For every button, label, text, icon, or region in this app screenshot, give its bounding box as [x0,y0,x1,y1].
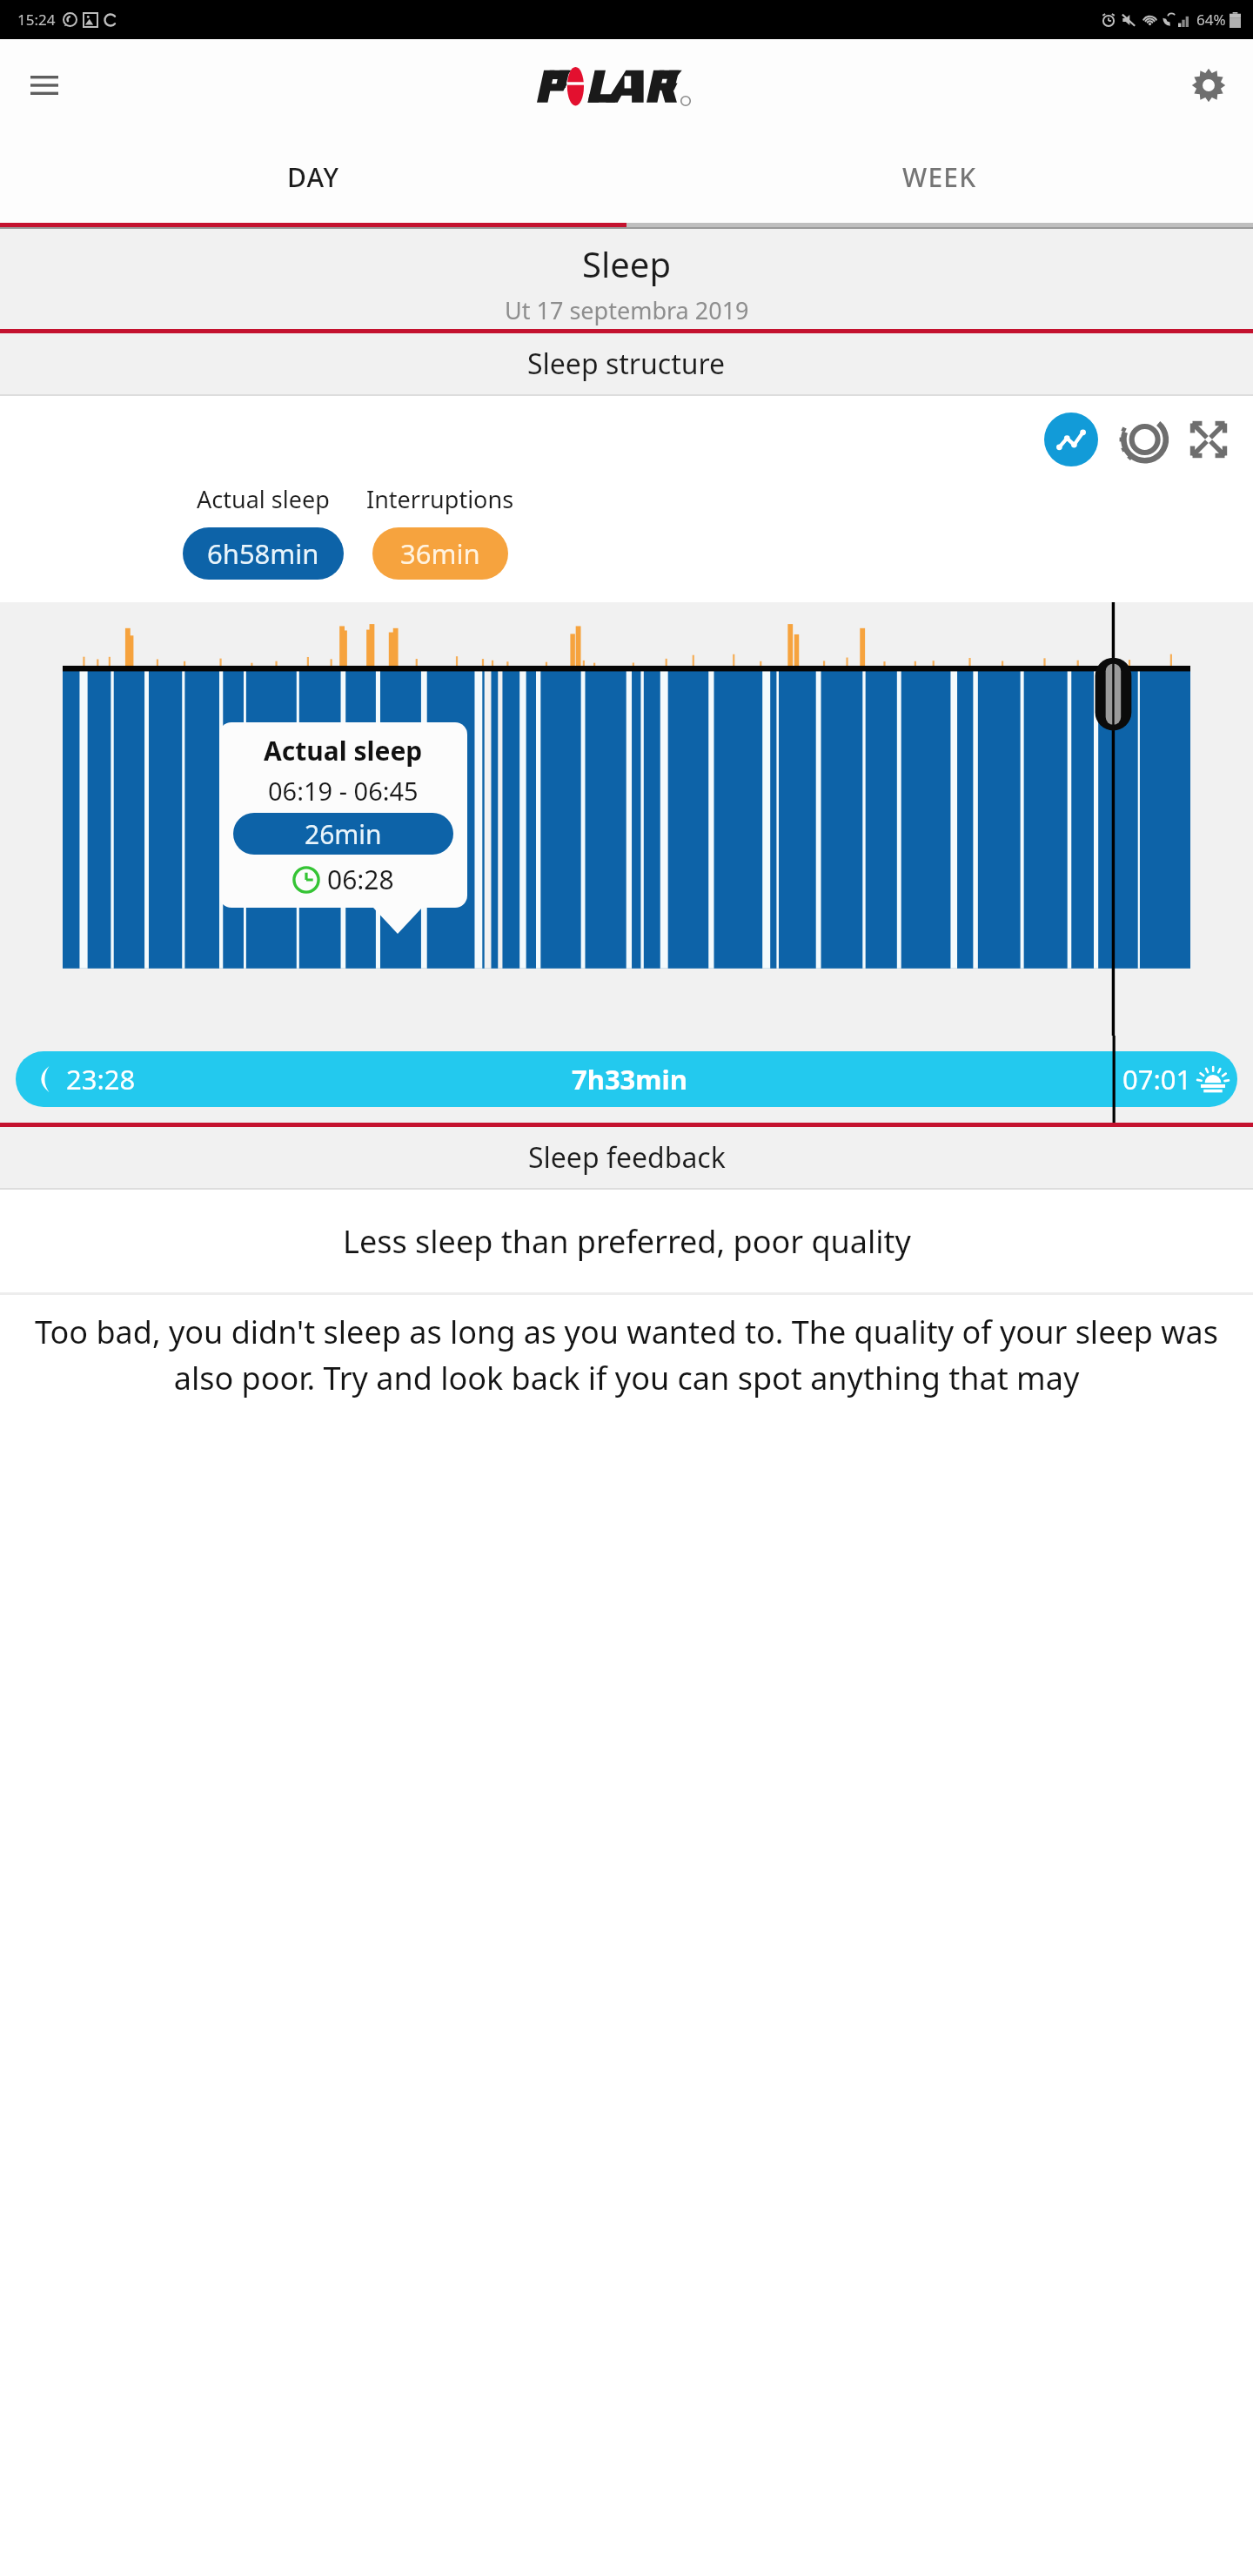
staticText: Sleep feedback [528,1138,726,1177]
staticText: 6h58min [207,535,319,572]
staticText: Ut 17 septembra 2019 [505,294,749,326]
staticText: Interruptions [366,483,514,515]
button[interactable]: Settings [1180,57,1237,114]
staticText: Actual sleep [264,733,423,768]
staticText: 7h33min [572,1061,687,1097]
staticText: 26min [305,816,382,852]
staticText: DAY [287,159,340,195]
staticText: 06:28 [327,862,394,897]
staticText: Too bad, you didn't sleep as long as you… [31,1311,1222,1399]
staticText: Sleep [582,240,671,287]
button[interactable]: Fullscreen [1183,414,1234,465]
button[interactable]: 36min [400,535,480,572]
button[interactable]: 6h58min [207,535,319,572]
staticText: WEEK [902,159,977,195]
staticText: 64% [1196,10,1226,30]
button[interactable]: WEEK [626,131,1253,223]
staticText: Sleep structure [527,345,726,383]
staticText: 07:01 [1122,1061,1192,1097]
button[interactable]: Menu [16,57,73,114]
button[interactable]: DAY [0,131,626,223]
button[interactable]: Line chart view [1044,413,1098,466]
staticText: Actual sleep [197,483,330,515]
button[interactable]: 23:28 [16,1051,1237,1107]
button[interactable]: Sleep cycle view [1117,414,1168,465]
staticText: 15:24 [17,10,56,30]
staticText: Less sleep than preferred, poor quality [343,1220,911,1263]
staticText: 06:19 - 06:45 [268,774,419,808]
button[interactable]: Actual sleep [233,733,453,897]
staticText: 36min [400,535,480,572]
staticText: 23:28 [66,1061,136,1097]
